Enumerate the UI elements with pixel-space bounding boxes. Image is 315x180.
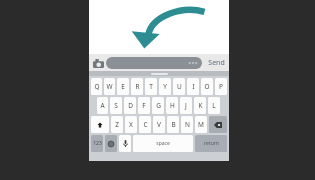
- staticText: B: [171, 120, 176, 129]
- button[interactable]: X: [125, 116, 137, 133]
- staticText: R: [135, 82, 140, 91]
- staticText: Send: [208, 58, 225, 68]
- staticText: Z: [115, 120, 119, 129]
- staticText: A: [100, 101, 105, 110]
- button[interactable]: H: [166, 97, 178, 114]
- button[interactable]: W: [104, 78, 115, 95]
- staticText: M: [198, 120, 204, 129]
- button[interactable]: Shift: [91, 116, 109, 133]
- button[interactable]: space: [133, 135, 193, 152]
- button[interactable]: T: [145, 78, 157, 95]
- staticText: N: [185, 120, 190, 129]
- button[interactable]: 123: [91, 135, 103, 152]
- staticText: T: [149, 82, 153, 91]
- staticText: W: [106, 82, 113, 91]
- staticText: U: [177, 82, 182, 91]
- button[interactable]: return: [195, 135, 227, 152]
- staticText: D: [128, 101, 133, 110]
- staticText: C: [143, 120, 148, 129]
- button[interactable]: I: [187, 78, 199, 95]
- staticText: 123: [93, 140, 102, 147]
- button[interactable]: Y: [159, 78, 171, 95]
- staticText: J: [185, 101, 187, 110]
- button[interactable]: Voice input: [119, 135, 131, 152]
- staticText: S: [114, 101, 118, 110]
- button[interactable]: Z: [111, 116, 123, 133]
- staticText: P: [219, 82, 223, 91]
- button[interactable]: Q: [91, 78, 102, 95]
- staticText: G: [156, 101, 161, 110]
- button[interactable]: B: [167, 116, 179, 133]
- button[interactable]: A: [97, 97, 108, 114]
- staticText: E: [121, 82, 125, 91]
- staticText: I: [192, 82, 195, 91]
- staticText: space: [156, 140, 170, 147]
- button[interactable]: P: [215, 78, 227, 95]
- button[interactable]: Camera: [91, 56, 105, 70]
- button[interactable]: Backspace: [209, 116, 227, 133]
- staticText: K: [198, 101, 203, 110]
- staticText: X: [129, 120, 133, 129]
- button[interactable]: Message input: [106, 57, 202, 69]
- button[interactable]: N: [181, 116, 193, 133]
- button[interactable]: K: [194, 97, 206, 114]
- staticText: V: [157, 120, 161, 129]
- staticText: Y: [163, 82, 167, 91]
- staticText: L: [212, 101, 216, 110]
- button[interactable]: O: [201, 78, 213, 95]
- button[interactable]: J: [180, 97, 192, 114]
- staticText: H: [170, 101, 175, 110]
- button[interactable]: E: [117, 78, 129, 95]
- button[interactable]: F: [138, 97, 150, 114]
- staticText: F: [142, 101, 146, 110]
- button[interactable]: D: [124, 97, 136, 114]
- staticText: Q: [94, 82, 100, 91]
- button[interactable]: G: [152, 97, 164, 114]
- button[interactable]: C: [139, 116, 151, 133]
- button[interactable]: R: [131, 78, 143, 95]
- button[interactable]: V: [153, 116, 165, 133]
- button[interactable]: Send: [205, 56, 227, 70]
- staticText: O: [204, 82, 210, 91]
- button[interactable]: L: [208, 97, 220, 114]
- button[interactable]: Change language: [105, 135, 117, 152]
- button[interactable]: U: [173, 78, 185, 95]
- button[interactable]: S: [110, 97, 122, 114]
- staticText: return: [204, 140, 219, 147]
- button[interactable]: M: [195, 116, 207, 133]
